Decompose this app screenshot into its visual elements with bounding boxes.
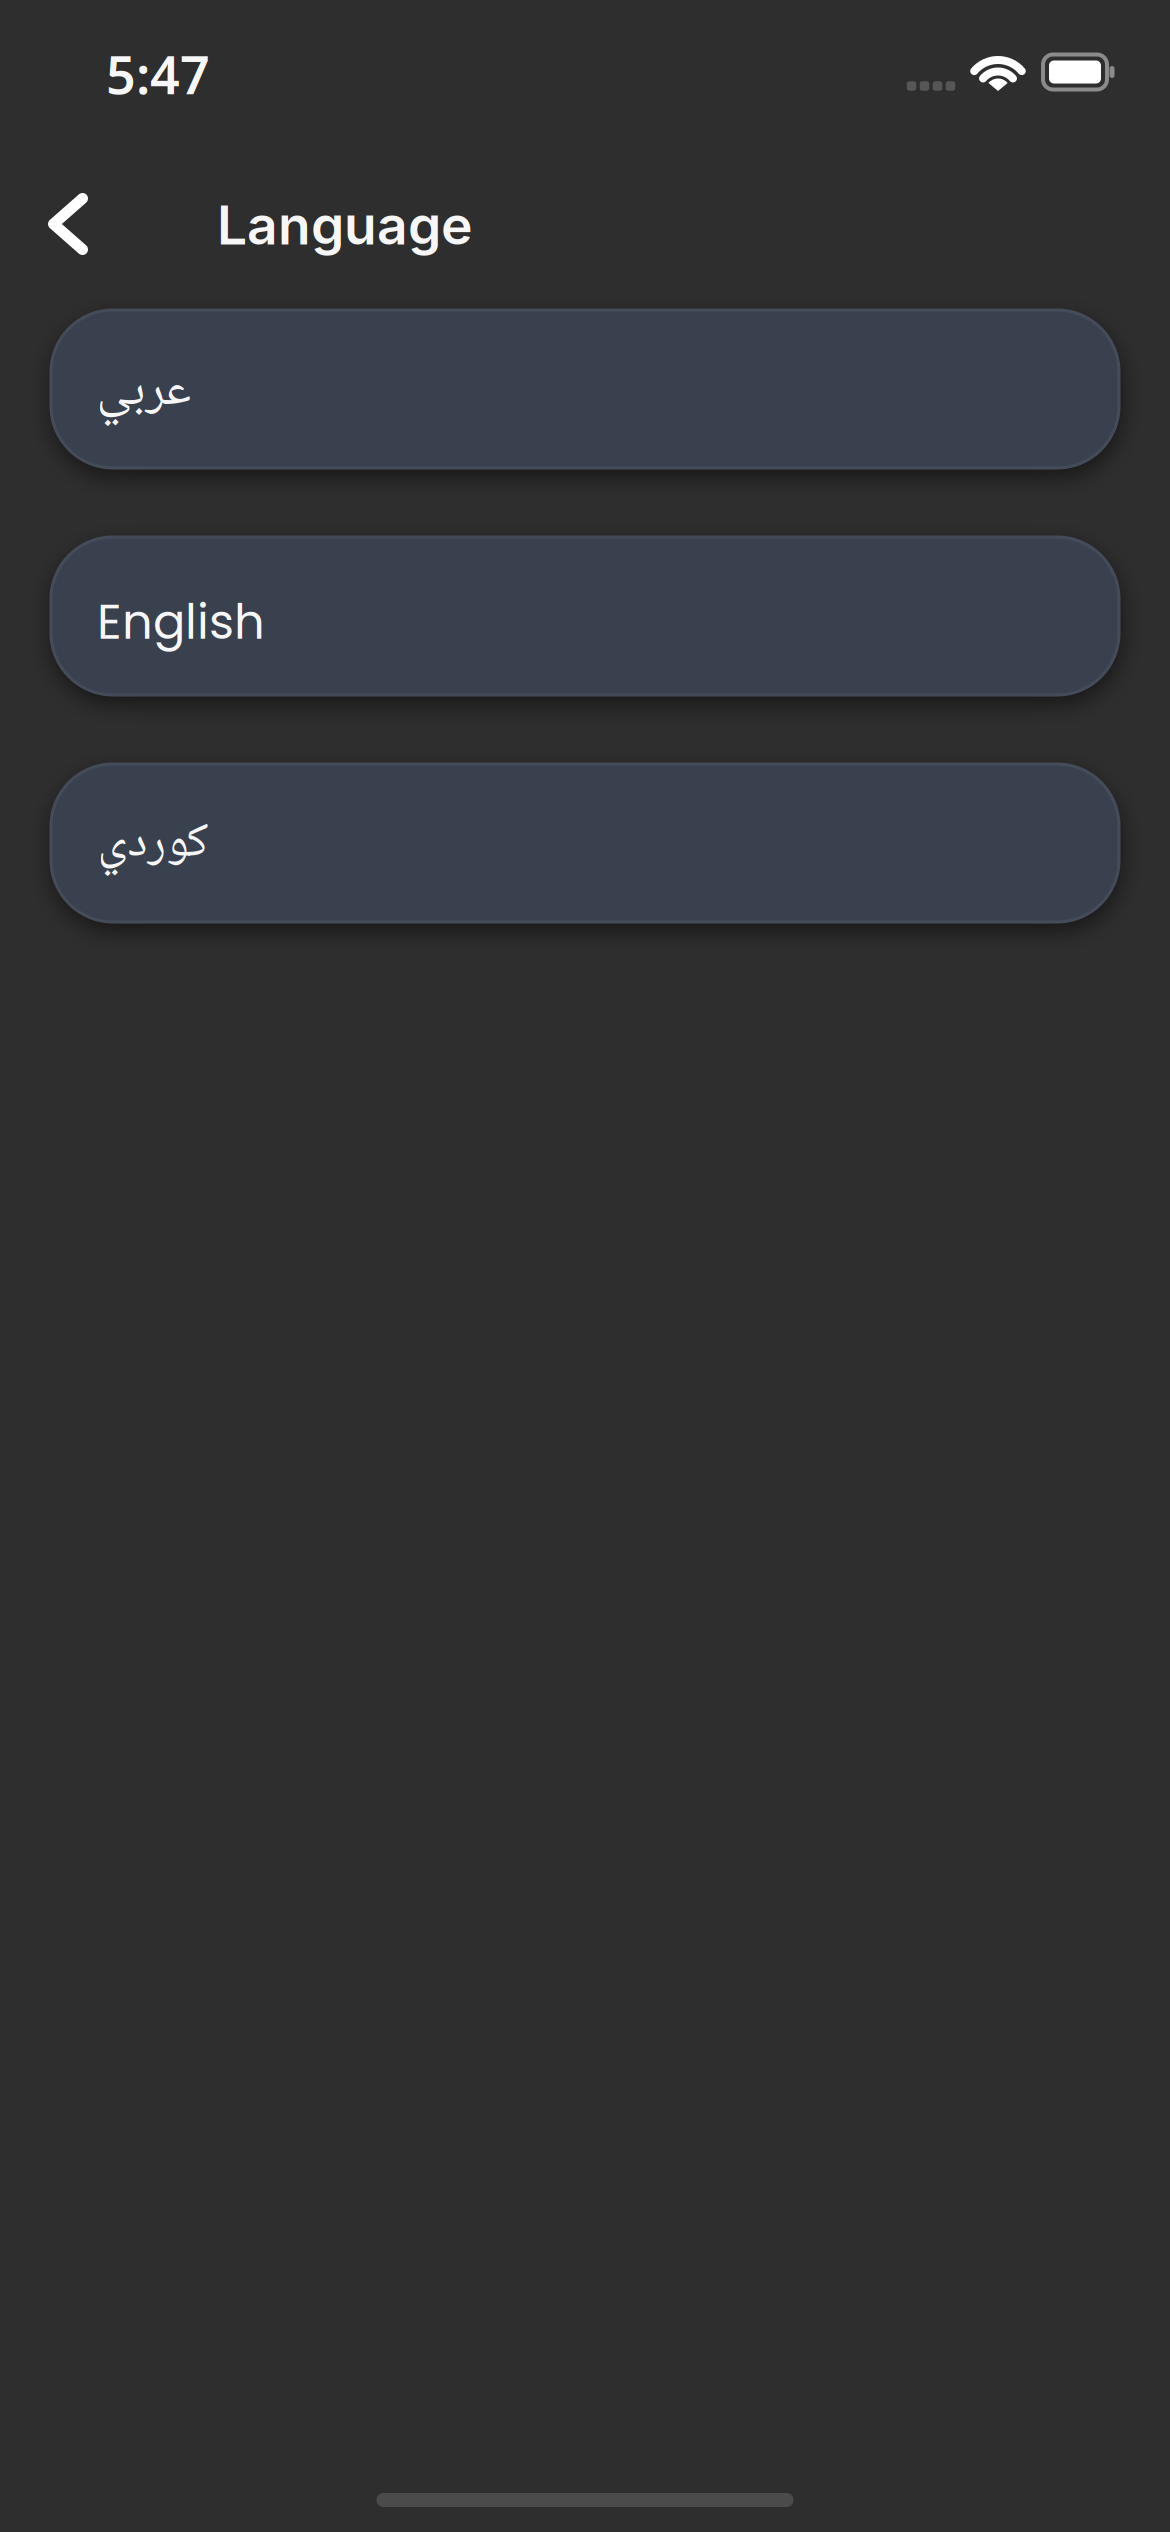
- staticText: 5:47: [106, 39, 210, 109]
- staticText: عربي: [96, 350, 191, 436]
- button[interactable]: English: [51, 537, 1119, 695]
- button[interactable]: Back: [45, 190, 90, 257]
- button[interactable]: عربي: [51, 310, 1119, 468]
- staticText: كوردي: [97, 804, 208, 886]
- button[interactable]: كوردي: [51, 764, 1119, 922]
- staticText: English: [97, 588, 265, 656]
- staticText: Language: [217, 193, 473, 257]
